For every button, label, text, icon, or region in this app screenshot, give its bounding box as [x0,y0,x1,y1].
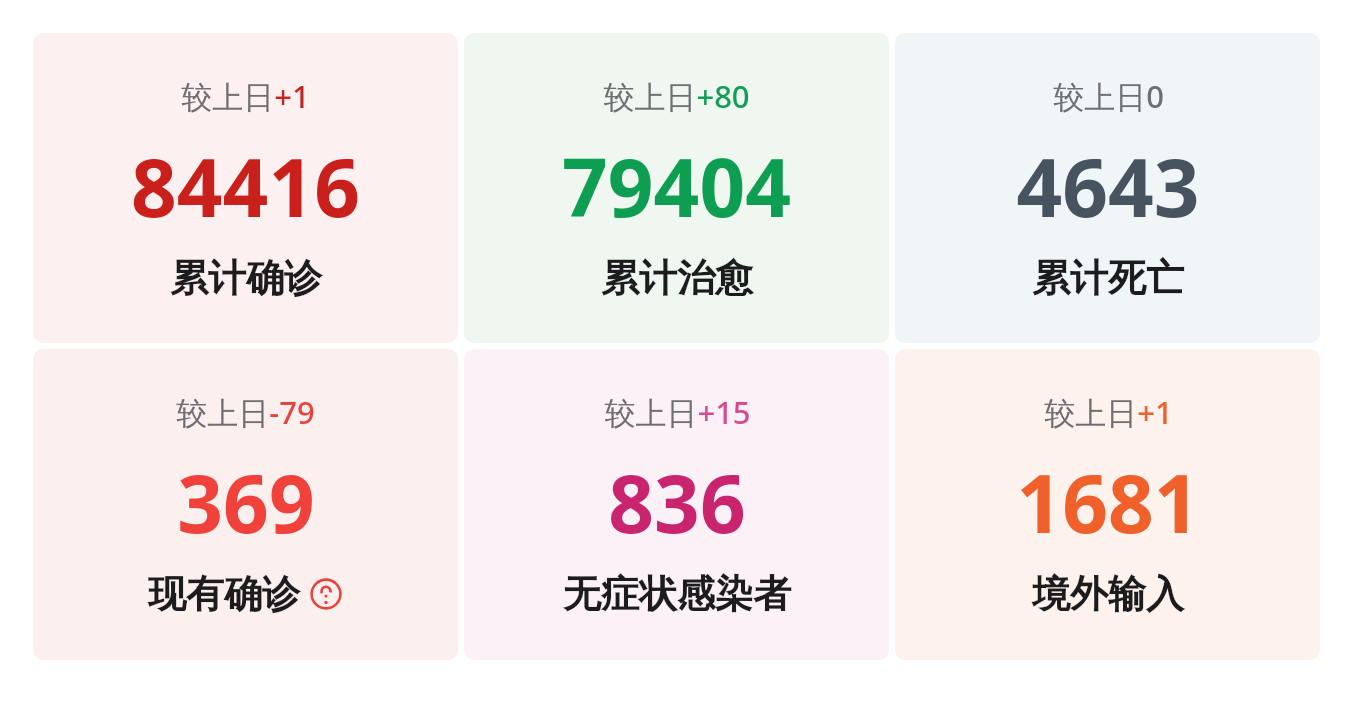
button[interactable]: 较上日+80 [464,33,889,343]
button[interactable]: 较上日0 [895,33,1320,343]
staticText: 较上日-79 [176,391,315,433]
staticText: 现有确诊 [148,570,300,618]
staticText: 境外输入 [1032,570,1184,618]
staticText: 较上日+1 [181,75,310,117]
staticText: 较上日0 [1053,75,1164,117]
staticText: 较上日+1 [1044,391,1173,433]
staticText: 无症状感染者 [563,570,791,618]
staticText: 累计死亡 [1032,254,1184,302]
staticText: 369 [177,447,315,556]
staticText: 4643 [1016,131,1200,240]
staticText: 1681 [1016,447,1200,556]
button[interactable]: 较上日-79 [33,349,458,660]
button[interactable]: 较上日+1 [895,349,1320,660]
staticText: 84416 [131,131,360,240]
staticText: 79404 [562,131,791,240]
staticText: 累计确诊 [170,254,322,302]
staticText: 较上日+15 [604,391,751,433]
staticText: 累计治愈 [601,254,753,302]
button[interactable]: 说明 [309,577,343,611]
staticText: 较上日+80 [603,75,750,117]
button[interactable]: 较上日+15 [464,349,889,660]
staticText: 836 [608,447,746,556]
button[interactable]: 较上日+1 [33,33,458,343]
